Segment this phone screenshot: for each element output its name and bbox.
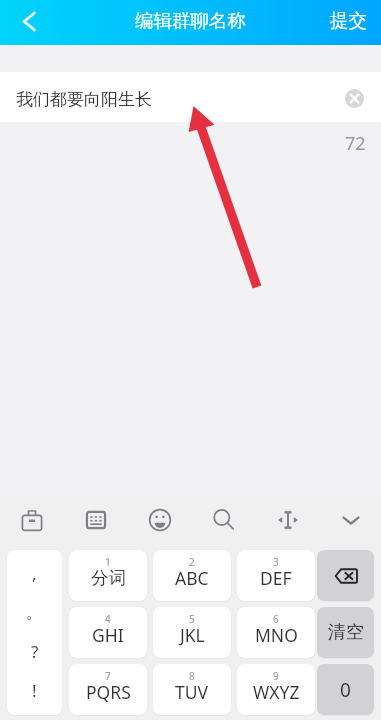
button[interactable]: 5 — [153, 607, 231, 658]
staticText: , — [32, 562, 37, 585]
staticText: WXYZ — [253, 680, 300, 704]
staticText: 2 — [189, 555, 195, 569]
staticText: 8 — [189, 669, 195, 683]
button[interactable]: Hide keyboard — [320, 496, 381, 550]
button[interactable]: Clear text — [345, 89, 364, 108]
button[interactable]: Clipboard — [0, 496, 64, 550]
staticText: 我们都要向阳生长 — [16, 89, 152, 110]
staticText: 编辑群聊名称 — [135, 9, 246, 32]
staticText: 分词 — [91, 567, 126, 589]
button[interactable]: , — [7, 550, 62, 715]
staticText: 3 — [273, 555, 279, 569]
staticText: 清空 — [328, 621, 364, 644]
staticText: 4 — [105, 612, 111, 626]
button[interactable]: 3 — [237, 550, 315, 601]
button[interactable]: Move cursor — [256, 496, 320, 550]
button[interactable]: Emoji — [128, 496, 192, 550]
staticText: MNO — [255, 623, 298, 647]
button[interactable]: 清空 — [317, 607, 374, 658]
staticText: PQRS — [86, 680, 131, 704]
button[interactable]: Backspace — [317, 550, 374, 601]
staticText: 5 — [189, 612, 195, 626]
staticText: ! — [32, 679, 37, 702]
staticText: 7 — [105, 669, 111, 683]
staticText: 6 — [273, 612, 279, 626]
staticText: 1 — [105, 555, 111, 569]
button[interactable]: Back — [0, 0, 58, 45]
button[interactable]: 9 — [237, 664, 315, 715]
staticText: TUV — [175, 680, 209, 704]
staticText: 。 — [26, 602, 43, 623]
button[interactable]: 1 — [69, 550, 147, 601]
button[interactable]: Search — [192, 496, 256, 550]
staticText: ? — [31, 640, 39, 663]
button[interactable]: 4 — [69, 607, 147, 658]
staticText: 0 — [340, 677, 351, 703]
button[interactable]: 8 — [153, 664, 231, 715]
staticText: DEF — [260, 566, 292, 590]
button[interactable]: 6 — [237, 607, 315, 658]
staticText: 9 — [273, 669, 279, 683]
staticText: 提交 — [330, 9, 367, 32]
button[interactable]: 0 — [317, 664, 374, 715]
button[interactable]: 7 — [69, 664, 147, 715]
staticText: ABC — [175, 566, 209, 590]
button[interactable]: 提交 — [316, 0, 381, 45]
staticText: 72 — [345, 131, 366, 156]
staticText: GHI — [92, 623, 124, 647]
button[interactable]: 2 — [153, 550, 231, 601]
button[interactable]: Keyboard layout — [64, 496, 128, 550]
staticText: JKL — [180, 623, 205, 647]
